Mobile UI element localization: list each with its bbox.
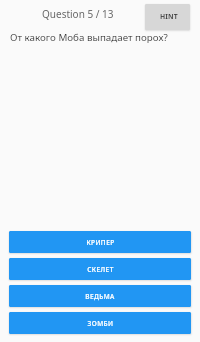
staticText: ЗОМБИ [87, 319, 114, 328]
button[interactable]: СКЕЛЕТ [9, 258, 191, 280]
button[interactable]: ЗОМБИ [9, 312, 191, 334]
staticText: Question 5 / 13 [42, 7, 114, 21]
staticText: КРИПЕР [86, 238, 115, 247]
button[interactable]: ВЕДЬМА [9, 285, 191, 307]
staticText: ВЕДЬМА [85, 292, 115, 301]
staticText: СКЕЛЕТ [87, 265, 114, 274]
staticText: HINT [160, 12, 178, 21]
button[interactable]: HINT [145, 4, 190, 30]
staticText: От какого Моба выпадает порох? [10, 31, 168, 44]
button[interactable]: КРИПЕР [9, 231, 191, 253]
